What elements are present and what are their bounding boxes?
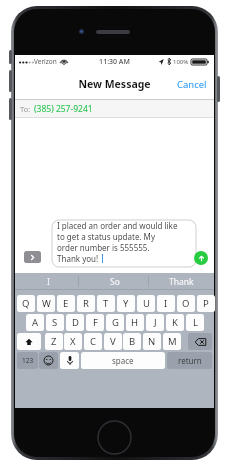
staticText: 100% <box>173 58 189 66</box>
staticText: W <box>42 297 51 310</box>
staticText: To: <box>20 104 31 114</box>
staticText: I <box>164 297 168 310</box>
button[interactable]: B <box>123 333 141 350</box>
button[interactable]: H <box>126 314 144 331</box>
staticText: J <box>154 316 157 329</box>
button[interactable]: S <box>46 314 64 331</box>
staticText: G <box>112 316 119 329</box>
staticText: to get a status update. My <box>57 231 155 242</box>
button[interactable]: Dictation <box>60 352 79 369</box>
staticText: space <box>112 355 134 366</box>
staticText: X <box>70 335 76 348</box>
button[interactable]: L <box>186 314 204 331</box>
staticText: Cancel <box>177 78 207 91</box>
button[interactable]: J <box>146 314 164 331</box>
button[interactable]: Show more apps <box>24 251 41 263</box>
staticText: K <box>172 316 178 329</box>
staticText: return <box>178 355 202 366</box>
staticText: I <box>47 276 50 288</box>
button[interactable]: D <box>66 314 84 331</box>
staticText: E <box>63 297 69 310</box>
button[interactable]: V <box>104 333 122 350</box>
button[interactable]: O <box>177 295 195 312</box>
button[interactable]: return <box>167 352 212 369</box>
staticText: H <box>131 316 139 329</box>
staticText: C <box>90 335 97 348</box>
button[interactable]: Backspace <box>188 333 212 350</box>
button[interactable]: K <box>166 314 184 331</box>
staticText: 123 <box>22 356 34 365</box>
staticText: D <box>72 316 79 329</box>
button[interactable]: C <box>84 333 102 350</box>
button[interactable]: R <box>77 295 95 312</box>
button[interactable]: Send <box>194 251 208 265</box>
staticText: P <box>203 297 209 310</box>
button[interactable]: E <box>57 295 75 312</box>
staticText: A <box>32 316 39 329</box>
button[interactable]: F <box>86 314 104 331</box>
button[interactable]: N <box>143 333 161 350</box>
staticText: L <box>193 316 198 329</box>
staticText: New Message <box>15 77 214 91</box>
staticText: Y <box>123 297 129 310</box>
staticText: T <box>103 297 109 310</box>
button[interactable]: Emoji <box>39 352 58 369</box>
button[interactable]: G <box>106 314 124 331</box>
staticText: N <box>148 335 156 348</box>
button[interactable]: To: <box>15 100 214 118</box>
staticText: Verizon <box>34 57 57 66</box>
staticText: F <box>93 316 98 329</box>
staticText: B <box>129 335 136 348</box>
button[interactable]: A <box>26 314 44 331</box>
button[interactable]: M <box>163 333 181 350</box>
button[interactable]: I <box>157 295 175 312</box>
staticText: S <box>52 316 58 329</box>
staticText: O <box>182 297 190 310</box>
staticText: order number is 555555. <box>57 242 150 253</box>
button[interactable]: Z <box>45 333 63 350</box>
button[interactable]: space <box>81 352 165 369</box>
button[interactable]: So <box>82 273 148 290</box>
staticText: (385) 257-9241 <box>34 103 93 115</box>
button[interactable]: Shift <box>17 333 41 350</box>
button[interactable]: Cancel <box>170 72 214 97</box>
button[interactable]: I <box>15 273 82 290</box>
staticText: Z <box>51 335 57 348</box>
button[interactable]: T <box>97 295 115 312</box>
button[interactable]: I placed an order and would like <box>52 217 196 267</box>
staticText: U <box>143 297 150 310</box>
staticText: V <box>110 335 116 348</box>
button[interactable]: 123 <box>17 352 38 369</box>
button[interactable]: Y <box>117 295 135 312</box>
staticText: Thank you! <box>57 253 99 264</box>
button[interactable]: X <box>64 333 82 350</box>
staticText: Thank <box>169 276 194 288</box>
button[interactable]: P <box>197 295 215 312</box>
button[interactable]: Q <box>17 295 35 312</box>
button[interactable]: Thank <box>148 273 214 290</box>
staticText: R <box>83 297 89 310</box>
staticText: 11:30 AM <box>15 57 214 67</box>
staticText: I placed an order and would like <box>57 220 178 231</box>
button[interactable]: U <box>137 295 155 312</box>
staticText: M <box>168 335 177 348</box>
staticText: Q <box>22 297 30 310</box>
button[interactable]: W <box>37 295 55 312</box>
staticText: So <box>110 276 120 288</box>
